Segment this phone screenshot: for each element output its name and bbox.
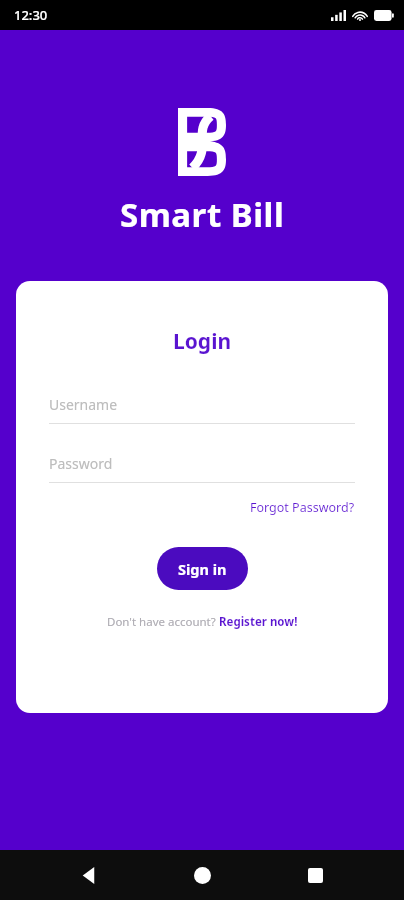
staticText: Don't have account? bbox=[107, 614, 219, 630]
button[interactable]: Home bbox=[178, 851, 226, 899]
button[interactable]: Password bbox=[49, 454, 355, 483]
button[interactable]: Register now! bbox=[219, 614, 298, 630]
staticText: Register now! bbox=[219, 614, 298, 630]
staticText: Sign in bbox=[178, 559, 227, 579]
staticText: Username bbox=[49, 395, 118, 414]
staticText: Smart Bill bbox=[120, 192, 285, 237]
staticText: 12:30 bbox=[14, 6, 48, 24]
button[interactable]: Sign in bbox=[157, 547, 248, 590]
staticText: Password bbox=[49, 454, 113, 473]
staticText: Forgot Password? bbox=[250, 499, 355, 516]
button[interactable]: Forgot Password? bbox=[49, 499, 355, 516]
button[interactable]: Username bbox=[49, 395, 355, 424]
button[interactable]: Recent apps bbox=[291, 851, 339, 899]
staticText: Login bbox=[173, 327, 232, 356]
button[interactable]: Back bbox=[65, 851, 113, 899]
